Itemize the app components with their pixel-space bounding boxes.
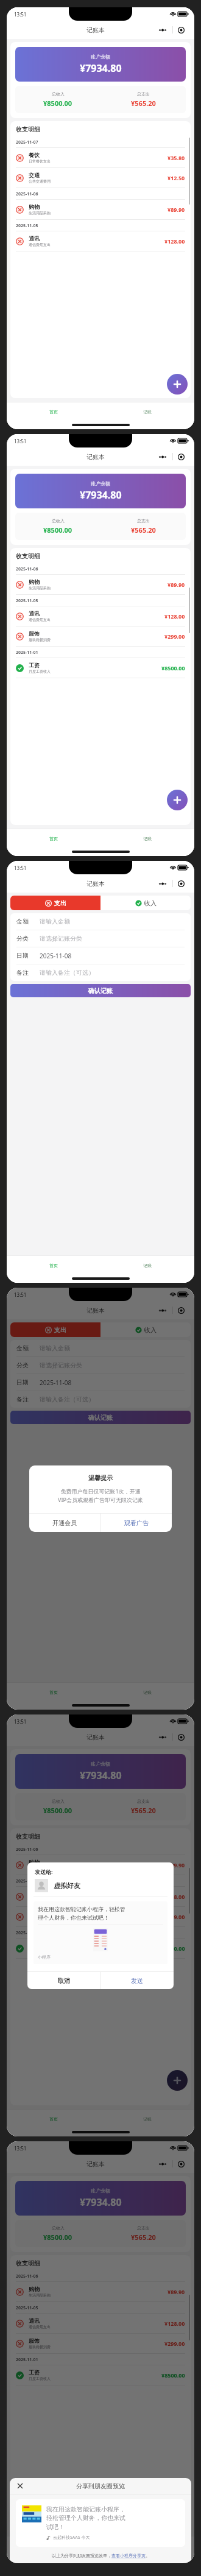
staticText: 确认记账 bbox=[88, 987, 113, 995]
staticText: 2025-11-05 bbox=[16, 223, 38, 229]
button[interactable]: 购物 bbox=[16, 1855, 185, 1875]
staticText: 日期 bbox=[16, 952, 40, 960]
button[interactable]: Add record bbox=[167, 2070, 188, 2091]
button[interactable]: 通讯 bbox=[16, 1887, 185, 1907]
button[interactable]: 收入 bbox=[100, 896, 191, 910]
button[interactable]: 首页 bbox=[7, 1256, 100, 1274]
button[interactable]: 备注 bbox=[10, 964, 191, 981]
staticText: ¥12.50 bbox=[167, 174, 185, 181]
button[interactable]: 确认记账 bbox=[10, 1411, 191, 1424]
button[interactable]: 首页 bbox=[7, 1683, 100, 1701]
staticText: 账户余额 bbox=[91, 54, 110, 60]
button[interactable]: 收入 bbox=[100, 1322, 191, 1337]
button[interactable]: Add record bbox=[167, 374, 188, 395]
button[interactable]: 首页 bbox=[7, 2536, 100, 2555]
button[interactable]: 购物 bbox=[16, 200, 185, 220]
staticText: 分享到朋友圈预览 bbox=[76, 2482, 125, 2490]
staticText: 总支出 bbox=[137, 518, 150, 524]
staticText: 通讯 bbox=[29, 1890, 40, 1897]
button[interactable]: 记账 bbox=[100, 1683, 194, 1701]
staticText: 首页 bbox=[49, 409, 58, 415]
button[interactable]: 日期 bbox=[10, 947, 191, 964]
button[interactable]: 购物 bbox=[16, 2282, 185, 2302]
staticText: 查看小程序分享页 bbox=[111, 2553, 146, 2558]
button[interactable]: Mini program menu bbox=[153, 451, 189, 463]
button[interactable]: 记账 bbox=[100, 829, 194, 848]
button[interactable]: 金额 bbox=[10, 913, 191, 930]
staticText: 通信费用支出 bbox=[29, 242, 51, 247]
button[interactable]: 确认记账 bbox=[10, 984, 191, 997]
button[interactable]: 服饰 bbox=[16, 626, 185, 647]
button[interactable]: Add record bbox=[167, 2497, 188, 2518]
button[interactable]: 分类 bbox=[10, 930, 191, 947]
staticText: ¥128.00 bbox=[164, 2320, 185, 2327]
button[interactable]: 取消 bbox=[27, 1972, 100, 1989]
button[interactable]: 支出 bbox=[10, 1322, 100, 1337]
staticText: ¥8500.00 bbox=[43, 525, 72, 535]
button[interactable]: Mini program menu bbox=[153, 877, 189, 890]
button[interactable]: 工资 bbox=[16, 658, 185, 678]
staticText: 小程序 bbox=[38, 1954, 51, 1960]
staticText: 通信费用支出 bbox=[29, 617, 51, 622]
button[interactable]: 记账 bbox=[100, 2110, 194, 2128]
button[interactable]: 首页 bbox=[7, 402, 100, 421]
button[interactable]: 服饰 bbox=[16, 2334, 185, 2354]
staticText: 收支明细 bbox=[16, 552, 40, 560]
staticText: ¥8500.00 bbox=[43, 1806, 72, 1815]
button[interactable]: Mini program menu bbox=[153, 2158, 189, 2170]
button[interactable]: 分类 bbox=[10, 1357, 191, 1374]
button[interactable]: 开通会员 bbox=[29, 1514, 100, 1532]
button[interactable]: Mini program menu bbox=[153, 1731, 189, 1743]
staticText: ¥299.00 bbox=[164, 1913, 185, 1920]
button[interactable]: Mini program menu bbox=[153, 24, 189, 36]
staticText: 服装鞋帽消费 bbox=[29, 637, 51, 642]
staticText: 我在用这款智能记账小程序， 轻松管理个人财务，你也来试 试吧！ bbox=[46, 2505, 125, 2531]
staticText: ¥128.00 bbox=[164, 1893, 185, 1900]
staticText: 服饰 bbox=[29, 2337, 40, 2344]
button[interactable]: 服饰 bbox=[16, 1907, 185, 1927]
staticText: 记账本 bbox=[86, 1307, 105, 1314]
staticText: 首页 bbox=[49, 1690, 58, 1695]
button[interactable]: 发送 bbox=[100, 1972, 174, 1989]
staticText: 收支明细 bbox=[16, 1833, 40, 1841]
button[interactable]: 工资 bbox=[16, 1939, 185, 1959]
staticText: 金额 bbox=[16, 1344, 40, 1352]
button[interactable]: 餐饮 bbox=[16, 148, 185, 168]
button[interactable]: 日期 bbox=[10, 1374, 191, 1391]
button[interactable]: 首页 bbox=[7, 2110, 100, 2128]
button[interactable]: 查看小程序分享页 bbox=[111, 2553, 146, 2558]
staticText: 总支出 bbox=[137, 91, 150, 97]
staticText: 2025-11-06 bbox=[16, 566, 38, 572]
staticText: 以上为分享到朋友圈预览效果， bbox=[52, 2553, 111, 2558]
staticText: ¥8500.00 bbox=[161, 664, 185, 672]
staticText: ¥8500.00 bbox=[43, 2233, 72, 2242]
staticText: 首页 bbox=[49, 2116, 58, 2122]
staticText: 购物 bbox=[29, 578, 40, 585]
button[interactable]: Mini program menu bbox=[153, 1304, 189, 1316]
button[interactable]: Close bbox=[16, 2482, 24, 2490]
button[interactable]: 交通 bbox=[16, 168, 185, 188]
staticText: 工资 bbox=[29, 662, 40, 669]
button[interactable]: 支出 bbox=[10, 896, 100, 910]
button[interactable]: 购物 bbox=[16, 575, 185, 595]
button[interactable]: 金额 bbox=[10, 1340, 191, 1357]
staticText: 观看广告 bbox=[124, 1519, 149, 1527]
staticText: 收入 bbox=[144, 899, 157, 907]
button[interactable]: 记账 bbox=[100, 1256, 194, 1274]
button[interactable]: 备注 bbox=[10, 1391, 191, 1408]
button[interactable]: 工资 bbox=[16, 2365, 185, 2385]
button[interactable]: Add record bbox=[167, 790, 188, 810]
staticText: 2025-11-01 bbox=[16, 1930, 38, 1936]
button[interactable]: 观看广告 bbox=[100, 1514, 172, 1532]
staticText: 13:51 bbox=[14, 2145, 27, 2152]
button[interactable]: 通讯 bbox=[16, 231, 185, 251]
staticText: 生活用品采购 bbox=[29, 211, 51, 216]
staticText: 13:51 bbox=[14, 438, 27, 444]
button[interactable]: 通讯 bbox=[16, 2314, 185, 2334]
button[interactable]: 首页 bbox=[7, 829, 100, 848]
staticText: ¥299.00 bbox=[164, 633, 185, 640]
button[interactable]: 记账 bbox=[100, 402, 194, 421]
staticText: 购物 bbox=[29, 203, 40, 210]
button[interactable]: 通讯 bbox=[16, 606, 185, 626]
button[interactable]: 记账 bbox=[100, 2536, 194, 2555]
